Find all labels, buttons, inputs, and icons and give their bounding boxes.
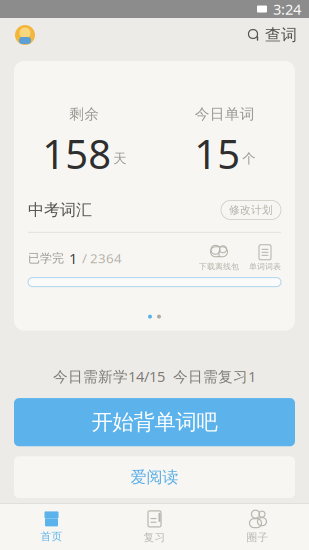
staticText: 首页 xyxy=(40,530,62,543)
staticText: 修改计划 xyxy=(229,203,273,216)
staticText: 15 xyxy=(194,127,240,180)
staticText: 开始背单词吧 xyxy=(91,409,217,435)
staticText: 爱阅读 xyxy=(130,467,178,487)
staticText: 查词 xyxy=(265,25,297,45)
button[interactable]: 下载离线包 xyxy=(199,245,239,272)
button[interactable]: 爱阅读 xyxy=(14,456,295,498)
staticText: 下载离线包 xyxy=(199,262,239,272)
button[interactable]: 修改计划 xyxy=(221,200,281,219)
staticText: 剩余 xyxy=(69,105,99,123)
staticText: 已学完 xyxy=(28,251,64,265)
staticText: 复习 xyxy=(143,531,165,544)
staticText: 个 xyxy=(242,150,255,167)
staticText: 3:24 xyxy=(273,0,301,19)
button[interactable]: 查词 xyxy=(247,25,309,45)
staticText: 中考词汇 xyxy=(28,200,92,220)
staticText: 158 xyxy=(42,127,111,180)
button[interactable]: 圈子 xyxy=(206,504,309,550)
staticText: 单词词表 xyxy=(249,262,281,272)
staticText: 天 xyxy=(113,150,126,167)
button[interactable]: 单词词表 xyxy=(249,245,281,272)
staticText: / 2364 xyxy=(82,249,122,267)
button[interactable]: Profile xyxy=(0,22,38,48)
button[interactable]: 复习 xyxy=(103,504,206,550)
staticText: 今日单词 xyxy=(195,105,255,123)
staticText: 今日需新学14/15 今日需复习1 xyxy=(53,367,256,386)
button[interactable]: 首页 xyxy=(0,505,103,549)
staticText: 圈子 xyxy=(246,531,268,544)
button[interactable]: 开始背单词吧 xyxy=(14,398,295,446)
staticText: 1 xyxy=(69,248,77,268)
